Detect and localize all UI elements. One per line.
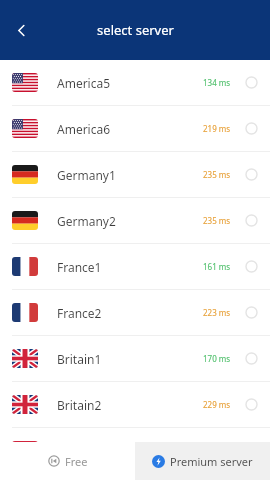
button[interactable]: France1 (0, 244, 270, 290)
button[interactable]: Free (0, 442, 135, 480)
staticText: 134 ms (203, 77, 231, 88)
staticText: 229 ms (203, 399, 231, 410)
button[interactable]: Premium server (135, 442, 270, 480)
button[interactable]: Britain1 (0, 336, 270, 382)
button[interactable]: France2 (0, 290, 270, 336)
staticText: select server (97, 21, 174, 39)
button[interactable]: Netherlands1 (0, 428, 270, 474)
staticText: France1 (57, 259, 102, 275)
staticText: Britain2 (57, 397, 102, 413)
staticText: 235 ms (203, 215, 231, 226)
staticText: Britain1 (57, 351, 102, 367)
staticText: 161 ms (203, 261, 231, 272)
staticText: 235 ms (203, 169, 231, 180)
staticText: Free (65, 454, 88, 469)
staticText: 219 ms (203, 123, 231, 134)
staticText: 223 ms (203, 307, 231, 318)
button[interactable]: America6 (0, 106, 270, 152)
staticText: Netherlands1 (57, 443, 134, 459)
button[interactable]: America5 (0, 60, 270, 106)
staticText: Premium server (170, 454, 253, 469)
button[interactable]: Back (4, 13, 38, 47)
staticText: 170 ms (203, 353, 231, 364)
staticText: Germany2 (57, 213, 116, 229)
staticText: Germany1 (57, 167, 116, 183)
button[interactable]: Britain2 (0, 382, 270, 428)
button[interactable]: Germany1 (0, 152, 270, 198)
staticText: America5 (57, 75, 111, 91)
staticText: France2 (57, 305, 102, 321)
button[interactable]: Germany2 (0, 198, 270, 244)
staticText: America6 (57, 121, 111, 137)
